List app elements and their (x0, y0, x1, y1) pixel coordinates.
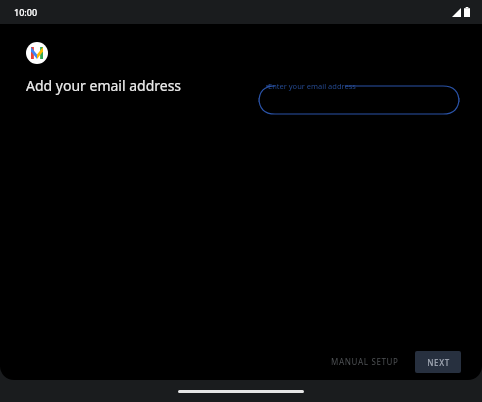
button[interactable]: MANUAL SETUP (323, 349, 407, 374)
staticText: 10:00 (14, 6, 38, 18)
button[interactable]: NEXT (415, 351, 461, 373)
staticText: NEXT (427, 357, 450, 368)
button[interactable]: Home (178, 390, 304, 393)
staticText: Enter your email address (268, 81, 356, 91)
staticText: MANUAL SETUP (331, 356, 399, 367)
button[interactable]: Enter your email address (259, 80, 459, 114)
staticText: Add your email address (26, 76, 182, 95)
